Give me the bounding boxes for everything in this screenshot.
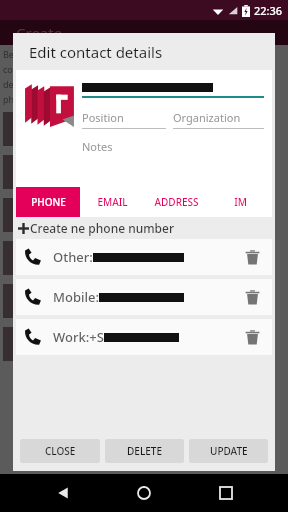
- button[interactable]: Recent apps: [207, 474, 245, 512]
- button[interactable]: IM: [208, 187, 272, 217]
- button[interactable]: Work:+S: [16, 319, 272, 355]
- staticText: CLOSE: [45, 444, 76, 458]
- button[interactable]: UPDATE: [189, 439, 268, 463]
- staticText: Notes: [82, 139, 113, 154]
- staticText: Organization: [173, 110, 241, 125]
- button[interactable]: Back: [44, 474, 82, 512]
- staticText: co: [3, 63, 13, 75]
- staticText: Create: [16, 23, 63, 43]
- staticText: Be: [3, 48, 14, 60]
- staticText: IM: [234, 195, 247, 209]
- staticText: Edit contact details: [29, 42, 163, 62]
- button[interactable]: EMAIL: [80, 187, 144, 217]
- button[interactable]: Create ne phone number: [13, 217, 275, 239]
- button[interactable]: CLOSE: [20, 439, 100, 463]
- button[interactable]: Delete: [240, 325, 264, 349]
- staticText: Mobile:: [53, 288, 99, 306]
- staticText: EMAIL: [97, 195, 128, 209]
- button[interactable]: Delete: [240, 285, 264, 309]
- staticText: DELETE: [127, 444, 162, 458]
- button[interactable]: ADDRESS: [144, 187, 208, 217]
- staticText: Create ne phone number: [30, 220, 174, 236]
- staticText: UPDATE: [210, 444, 248, 458]
- button[interactable]: Mobile:: [16, 279, 272, 315]
- staticText: PHONE: [31, 195, 66, 209]
- button[interactable]: DELETE: [105, 439, 184, 463]
- button[interactable]: Home: [125, 474, 163, 512]
- staticText: Work:+S: [53, 328, 104, 346]
- staticText: ph: [3, 93, 15, 105]
- button[interactable]: Delete: [240, 245, 264, 269]
- staticText: 22:36: [254, 3, 283, 18]
- staticText: de: [3, 78, 14, 90]
- staticText: Position: [82, 110, 124, 125]
- staticText: ADDRESS: [154, 195, 199, 209]
- button[interactable]: Other:: [16, 239, 272, 275]
- staticText: Other:: [53, 248, 93, 266]
- button[interactable]: PHONE: [16, 187, 80, 217]
